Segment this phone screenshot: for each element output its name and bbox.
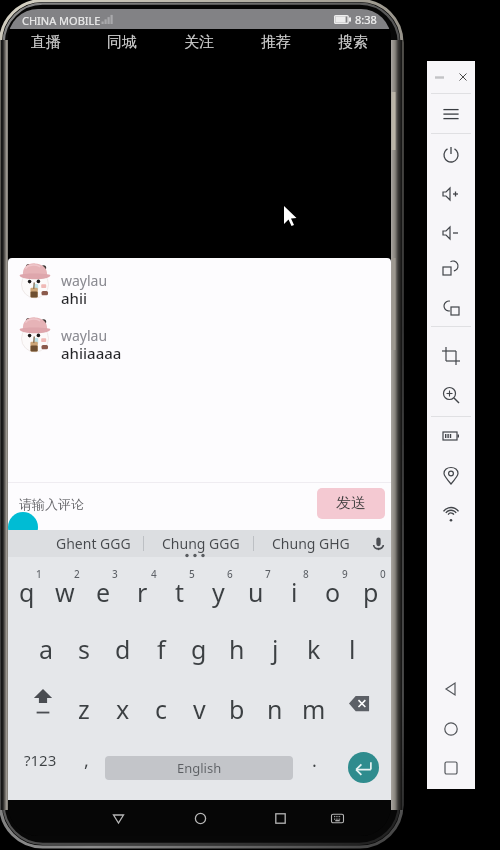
staticText: s xyxy=(78,632,90,666)
button[interactable]: Keyboard xyxy=(320,800,354,836)
button[interactable]: x xyxy=(104,690,142,728)
button[interactable]: Rotate right xyxy=(431,251,471,285)
button[interactable]: 发送 xyxy=(317,488,385,519)
staticText: m xyxy=(302,692,326,726)
staticText: f xyxy=(157,632,166,666)
staticText: p xyxy=(363,575,379,609)
button[interactable]: Cellular xyxy=(431,497,471,531)
staticText: 发送 xyxy=(336,494,366,513)
staticText: t xyxy=(175,575,185,609)
button[interactable]: Chung GHG xyxy=(262,530,360,557)
button[interactable]: Power xyxy=(431,138,471,172)
button[interactable]: 1 xyxy=(8,558,46,608)
button[interactable]: Chung GGG xyxy=(152,530,250,557)
staticText: o xyxy=(325,575,341,609)
staticText: 3 xyxy=(112,567,118,581)
button[interactable]: 0 xyxy=(352,558,390,608)
button[interactable]: k xyxy=(295,630,333,668)
button[interactable]: 同城 xyxy=(84,29,160,60)
button[interactable]: New post xyxy=(8,512,38,530)
staticText: Chung GGG xyxy=(162,534,240,553)
staticText: ?123 xyxy=(24,750,57,770)
button[interactable]: Battery xyxy=(431,419,471,453)
button[interactable]: ?123 xyxy=(12,740,68,780)
button[interactable]: Volume down xyxy=(431,216,471,250)
button[interactable]: 9 xyxy=(314,558,352,608)
button[interactable]: Overview xyxy=(431,751,471,785)
button[interactable]: j xyxy=(256,630,294,668)
button[interactable]: 8 xyxy=(275,558,313,608)
staticText: c xyxy=(155,692,168,726)
button[interactable]: c xyxy=(142,690,180,728)
button[interactable]: 搜索 xyxy=(314,29,391,60)
button[interactable]: Enter xyxy=(348,752,379,783)
button[interactable]: , xyxy=(70,740,102,780)
button[interactable]: Volume up xyxy=(431,177,471,211)
button[interactable]: Zoom xyxy=(431,378,471,412)
button[interactable]: z xyxy=(65,690,103,728)
button[interactable]: Rotate left xyxy=(431,291,471,325)
button[interactable]: 关注 xyxy=(160,29,237,60)
staticText: q xyxy=(19,575,35,609)
staticText: h xyxy=(229,632,245,666)
button[interactable]: 5 xyxy=(161,558,199,608)
button[interactable]: 7 xyxy=(237,558,275,608)
staticText: 6 xyxy=(227,567,233,581)
button[interactable]: s xyxy=(65,630,103,668)
button[interactable]: g xyxy=(180,630,218,668)
button[interactable]: h xyxy=(218,630,256,668)
button[interactable]: . xyxy=(298,740,330,780)
staticText: ahiiaaaa xyxy=(61,343,122,363)
button[interactable]: 2 xyxy=(46,558,84,608)
staticText: e xyxy=(96,575,111,609)
button[interactable]: Screenshot xyxy=(431,339,471,373)
staticText: u xyxy=(248,575,264,609)
staticText: ahii xyxy=(61,288,88,308)
staticText: , xyxy=(84,748,89,773)
button[interactable]: Back xyxy=(101,800,135,836)
button[interactable]: Menu xyxy=(431,97,471,131)
staticText: 搜索 xyxy=(338,33,368,52)
staticText: 9 xyxy=(342,567,348,581)
staticText: n xyxy=(267,692,283,726)
staticText: y xyxy=(212,575,225,609)
button[interactable]: d xyxy=(104,630,142,668)
button[interactable]: l xyxy=(333,630,371,668)
staticText: j xyxy=(272,632,279,666)
staticText: 4 xyxy=(151,567,157,581)
button[interactable]: 直播 xyxy=(8,29,84,60)
button[interactable]: b xyxy=(218,690,256,728)
button[interactable]: 3 xyxy=(84,558,122,608)
staticText: waylau xyxy=(61,271,108,290)
staticText: i xyxy=(291,575,298,609)
button[interactable]: f xyxy=(142,630,180,668)
staticText: Ghent GGG xyxy=(56,534,131,553)
button[interactable]: a xyxy=(27,630,65,668)
button[interactable]: Shift xyxy=(16,688,69,722)
staticText: 8 xyxy=(303,567,309,581)
button[interactable]: Ghent GGG xyxy=(44,530,142,557)
button[interactable]: Back xyxy=(431,672,471,706)
button[interactable]: 请输入评论 xyxy=(19,492,139,516)
staticText: 关注 xyxy=(184,33,214,52)
staticText: waylau xyxy=(61,326,108,345)
button[interactable]: Recents xyxy=(263,800,297,836)
staticText: Chung GHG xyxy=(272,534,350,553)
staticText: 请输入评论 xyxy=(19,496,84,512)
staticText: 2 xyxy=(74,567,80,581)
button[interactable]: v xyxy=(180,690,218,728)
staticText: v xyxy=(193,692,206,726)
button[interactable]: n xyxy=(256,690,294,728)
button[interactable]: Close xyxy=(459,73,467,81)
button[interactable]: Home xyxy=(431,712,471,746)
button[interactable]: Location xyxy=(431,459,471,493)
button[interactable]: 推荐 xyxy=(237,29,314,60)
button[interactable]: Voice input xyxy=(364,530,391,557)
button[interactable]: Backspace xyxy=(333,688,386,718)
button[interactable]: English xyxy=(105,756,293,780)
button[interactable]: 6 xyxy=(199,558,237,608)
button[interactable]: 4 xyxy=(123,558,161,608)
button[interactable]: m xyxy=(295,690,333,728)
button[interactable]: Home xyxy=(183,800,217,836)
button[interactable]: Minimize xyxy=(435,76,444,79)
